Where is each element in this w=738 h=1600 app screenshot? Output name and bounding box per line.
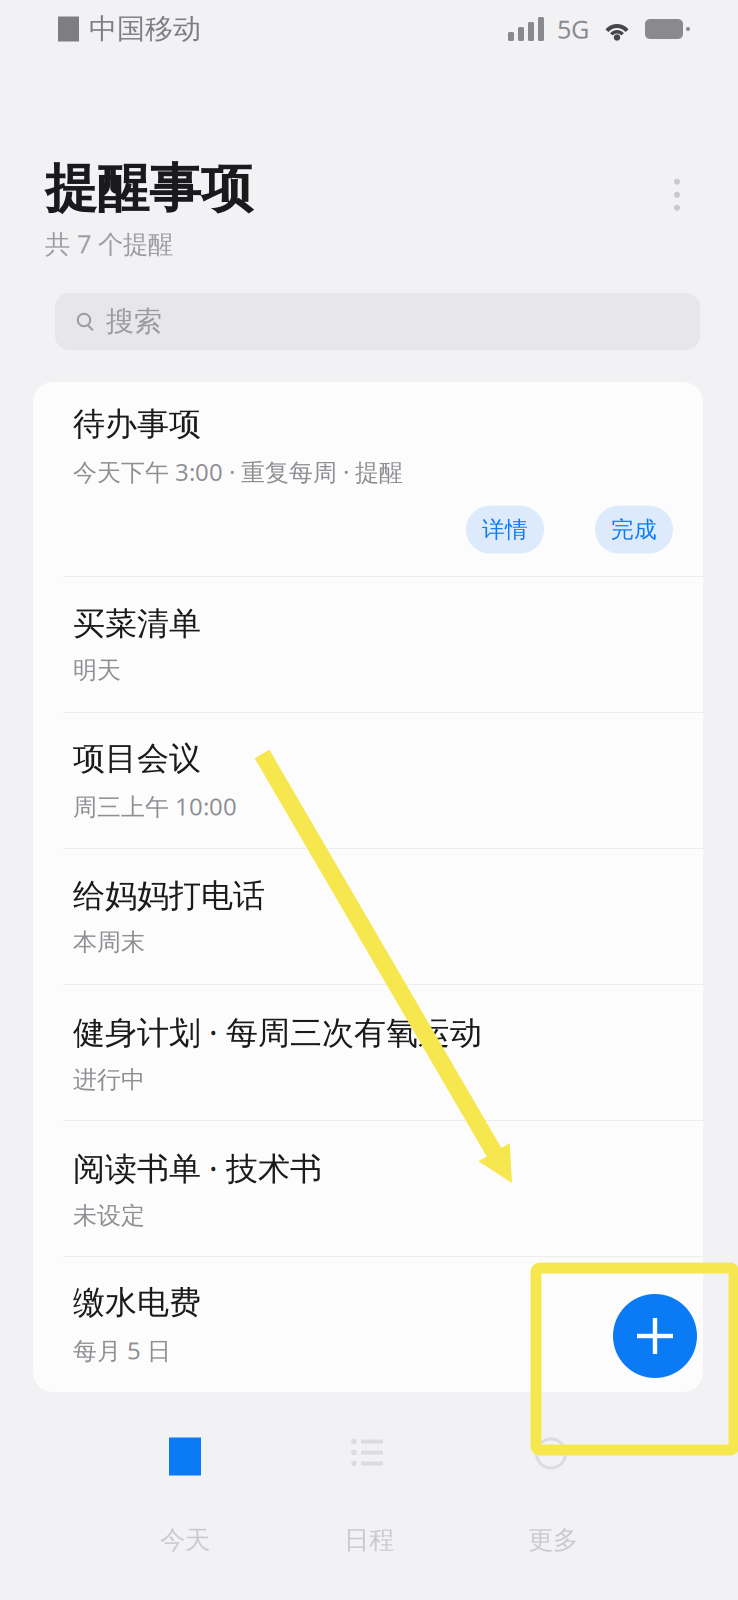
button[interactable]: 今天	[93, 1412, 277, 1582]
staticText: 5G	[557, 12, 589, 46]
staticText: 完成	[611, 516, 657, 543]
staticText: 更多	[528, 1524, 578, 1556]
staticText: 缴水电费	[73, 1283, 201, 1322]
staticText: 搜索	[106, 304, 162, 339]
staticText: 待办事项	[73, 404, 201, 444]
staticText: 项目会议	[73, 739, 201, 778]
staticText: 中国移动	[89, 12, 201, 46]
staticText: 未设定	[73, 1201, 145, 1230]
staticText: 每月 5 日	[73, 1334, 171, 1366]
staticText: 共 7 个提醒	[45, 227, 173, 260]
button[interactable]: More options	[646, 164, 708, 226]
button[interactable]: 更多	[461, 1412, 645, 1582]
button[interactable]: 搜索	[55, 293, 700, 350]
button[interactable]: Add reminder	[595, 1276, 715, 1396]
button[interactable]: 阅读书单 · 技术书	[33, 1121, 703, 1256]
button[interactable]: 详情	[466, 506, 544, 553]
staticText: 给妈妈打电话	[73, 876, 265, 915]
button[interactable]: 日程	[277, 1412, 461, 1582]
staticText: 阅读书单 · 技术书	[73, 1146, 322, 1189]
button[interactable]: 待办事项	[33, 382, 703, 576]
button[interactable]: 完成	[595, 506, 673, 553]
staticText: 买菜清单	[73, 604, 201, 643]
button[interactable]: 项目会议	[33, 713, 703, 848]
staticText: 今天	[160, 1524, 210, 1556]
staticText: 提醒事项	[45, 157, 253, 221]
staticText: 健身计划 · 每周三次有氧运动	[73, 1010, 482, 1053]
button[interactable]: 给妈妈打电话	[33, 849, 703, 984]
staticText: 进行中	[73, 1065, 145, 1094]
button[interactable]: 健身计划 · 每周三次有氧运动	[33, 985, 703, 1120]
staticText: 今天下午 3:00 · 重复每周 · 提醒	[73, 456, 403, 488]
staticText: 详情	[482, 516, 528, 543]
staticText: 本周末	[73, 927, 145, 957]
staticText: 日程	[344, 1524, 394, 1556]
button[interactable]: 缴水电费	[33, 1257, 703, 1392]
staticText: 周三上午 10:00	[73, 790, 237, 822]
button[interactable]: 买菜清单	[33, 577, 703, 712]
staticText: 明天	[73, 655, 121, 685]
